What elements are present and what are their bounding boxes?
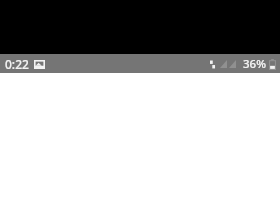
staticText: 0:22	[5, 56, 29, 72]
other: Screenshot captured	[34, 60, 45, 69]
other: Cellular signal	[220, 60, 227, 68]
staticText: 36%	[243, 56, 266, 72]
button[interactable]: Status bar	[0, 54, 280, 73]
other: Mobile data activity	[210, 60, 216, 69]
other: Battery 36 percent	[269, 59, 276, 70]
other: Cellular signal	[229, 60, 236, 68]
